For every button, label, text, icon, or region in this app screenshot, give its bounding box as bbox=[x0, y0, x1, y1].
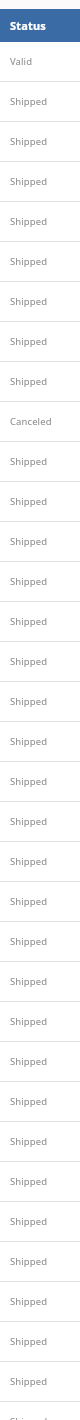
button[interactable]: Shipped bbox=[0, 962, 80, 1002]
staticText: Shipped bbox=[10, 895, 48, 908]
button[interactable]: Shipped bbox=[0, 682, 80, 722]
button[interactable]: Shipped bbox=[0, 322, 80, 362]
button[interactable]: Shipped bbox=[0, 842, 80, 882]
button[interactable]: Shipped bbox=[0, 1362, 80, 1402]
staticText: Shipped bbox=[10, 455, 48, 468]
staticText: Shipped bbox=[10, 375, 48, 388]
staticText: Shipped bbox=[10, 495, 48, 508]
button[interactable]: Canceled bbox=[0, 402, 80, 442]
button[interactable]: Shipped bbox=[0, 762, 80, 802]
button[interactable]: Shipped bbox=[0, 362, 80, 402]
staticText: Shipped bbox=[10, 775, 48, 788]
button[interactable]: Shipped bbox=[0, 282, 80, 322]
staticText: Shipped bbox=[10, 1335, 48, 1348]
staticText: Status bbox=[10, 18, 47, 33]
button[interactable]: Shipped bbox=[0, 122, 80, 162]
button[interactable]: Status bbox=[0, 9, 80, 42]
button[interactable]: Shipped bbox=[0, 1322, 80, 1362]
button[interactable]: Shipped bbox=[0, 1002, 80, 1042]
staticText: Shipped bbox=[10, 1015, 48, 1028]
staticText: Shipped bbox=[10, 975, 48, 988]
button[interactable]: Shipped bbox=[0, 242, 80, 282]
staticText: Shipped bbox=[10, 615, 48, 628]
staticText: Shipped bbox=[10, 1215, 48, 1228]
staticText: Shipped bbox=[10, 95, 48, 108]
button[interactable]: Shipped bbox=[0, 522, 80, 562]
staticText: Shipped bbox=[10, 1175, 48, 1188]
staticText: Canceled bbox=[10, 415, 52, 428]
button[interactable]: Shipped bbox=[0, 642, 80, 682]
staticText: Shipped bbox=[10, 935, 48, 948]
staticText: Shipped bbox=[10, 535, 48, 548]
button[interactable]: Shipped bbox=[0, 162, 80, 202]
staticText: Shipped bbox=[10, 295, 48, 308]
staticText: Shipped bbox=[10, 1135, 48, 1148]
button[interactable]: Shipped bbox=[0, 202, 80, 242]
button[interactable]: Shipped bbox=[0, 922, 80, 962]
staticText: Shipped bbox=[10, 335, 48, 348]
staticText: Shipped bbox=[10, 655, 48, 668]
button[interactable]: Shipped bbox=[0, 1202, 80, 1242]
staticText: Shipped bbox=[10, 215, 48, 228]
button[interactable]: Shipped bbox=[0, 1162, 80, 1202]
button[interactable]: Valid Approved bbox=[0, 42, 80, 82]
button[interactable]: Shipped bbox=[0, 802, 80, 842]
staticText: Shipped bbox=[10, 255, 48, 268]
button[interactable]: Shipped bbox=[0, 722, 80, 762]
staticText: Shipped bbox=[10, 1095, 48, 1108]
staticText: Shipped bbox=[10, 135, 48, 148]
button[interactable]: Shipped bbox=[0, 1242, 80, 1282]
button[interactable]: Shipped bbox=[0, 1082, 80, 1122]
button[interactable]: Shipped bbox=[0, 1042, 80, 1082]
staticText: Shipped bbox=[10, 1375, 48, 1388]
staticText: Shipped bbox=[10, 1255, 48, 1268]
button[interactable]: Shipped bbox=[0, 1402, 80, 1420]
button[interactable]: Shipped bbox=[0, 882, 80, 922]
staticText: Shipped bbox=[10, 815, 48, 828]
staticText: Shipped bbox=[10, 1055, 48, 1068]
button[interactable]: Shipped bbox=[0, 562, 80, 602]
button[interactable]: Shipped bbox=[0, 1282, 80, 1322]
staticText: Shipped bbox=[10, 855, 48, 868]
staticText: Valid Approved bbox=[10, 55, 77, 68]
staticText: Shipped bbox=[10, 575, 48, 588]
staticText: Shipped bbox=[10, 735, 48, 748]
staticText: Shipped bbox=[10, 1295, 48, 1308]
button[interactable]: Shipped bbox=[0, 442, 80, 482]
button[interactable]: Shipped bbox=[0, 82, 80, 122]
staticText: Shipped bbox=[10, 1415, 48, 1420]
staticText: Shipped bbox=[10, 175, 48, 188]
button[interactable]: Shipped bbox=[0, 602, 80, 642]
button[interactable]: Shipped bbox=[0, 482, 80, 522]
staticText: Shipped bbox=[10, 695, 48, 708]
button[interactable]: Shipped bbox=[0, 1122, 80, 1162]
